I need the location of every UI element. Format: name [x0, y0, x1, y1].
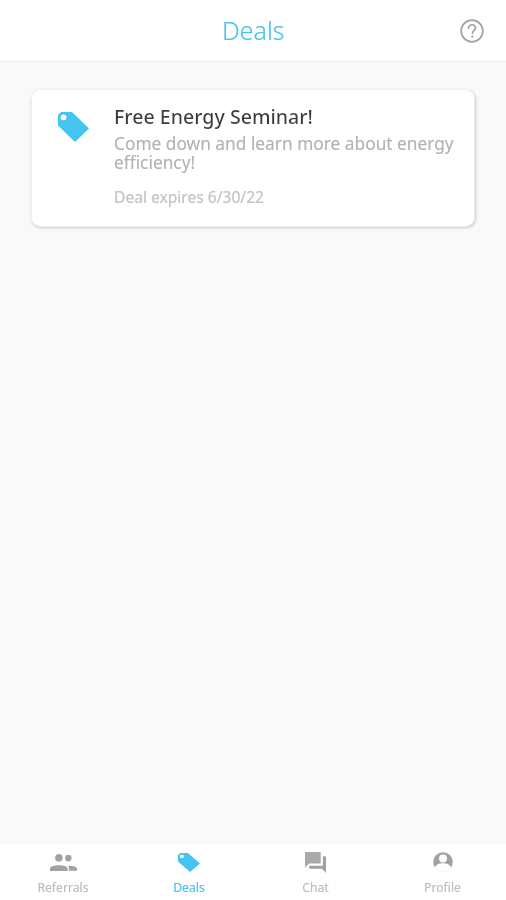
staticText: Free Energy Seminar!: [114, 103, 313, 130]
button[interactable]: Help: [450, 9, 494, 53]
button[interactable]: Deals: [126, 844, 252, 900]
staticText: Referrals: [37, 879, 89, 896]
staticText: Come down and learn more about energy ef…: [114, 132, 461, 174]
button[interactable]: Referrals: [0, 844, 126, 900]
staticText: Deal expires 6/30/22: [114, 186, 264, 207]
staticText: Deals: [173, 879, 205, 896]
staticText: Profile: [424, 879, 461, 896]
button[interactable]: Chat: [252, 844, 379, 900]
staticText: Chat: [302, 879, 329, 896]
button[interactable]: Profile: [379, 844, 506, 900]
staticText: Deals: [222, 13, 285, 47]
button[interactable]: Free Energy Seminar!: [31, 89, 475, 227]
